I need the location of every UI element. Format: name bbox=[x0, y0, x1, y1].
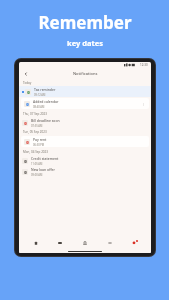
staticText: 09:12 AM bbox=[34, 93, 46, 97]
button[interactable]: More options bbox=[140, 101, 146, 107]
staticText: 12:30 bbox=[140, 63, 148, 67]
button[interactable]: Home bbox=[28, 237, 44, 249]
staticText: 09:00 AM bbox=[31, 173, 43, 177]
button[interactable]: Bill deadline soon bbox=[19, 117, 151, 128]
staticText: Remember bbox=[38, 11, 132, 34]
staticText: key dates bbox=[67, 38, 103, 48]
staticText: 06:30 PM bbox=[33, 143, 45, 147]
staticText: Notifications bbox=[73, 71, 98, 76]
staticText: Credit statement bbox=[31, 156, 59, 161]
staticText: Tue, 05 Sep 2023 bbox=[23, 130, 47, 134]
button[interactable]: Tax reminder bbox=[19, 86, 151, 97]
staticText: Added calendar bbox=[33, 99, 59, 104]
button[interactable]: Cards bbox=[52, 237, 68, 249]
staticText: Mon, 04 Sep 2023 bbox=[23, 150, 49, 154]
staticText: 08:40 AM bbox=[33, 105, 45, 109]
button[interactable]: Back bbox=[21, 69, 30, 78]
staticText: Thu, 07 Sep 2023 bbox=[23, 112, 48, 116]
button[interactable]: Added calendar bbox=[21, 98, 149, 109]
staticText: Pay rent bbox=[33, 137, 47, 142]
button[interactable]: Accounts bbox=[77, 237, 93, 249]
staticText: Today bbox=[23, 81, 32, 85]
button[interactable]: Pay rent bbox=[21, 136, 149, 147]
staticText: Tax reminder bbox=[34, 87, 56, 92]
button[interactable]: New loan offer bbox=[19, 166, 151, 177]
staticText: Bill deadline soon bbox=[31, 118, 60, 123]
staticText: New loan offer bbox=[31, 167, 55, 172]
button[interactable]: Credit statement bbox=[19, 155, 151, 166]
staticText: 07:55 AM bbox=[31, 124, 43, 128]
staticText: 11:05 AM bbox=[31, 162, 43, 166]
button[interactable]: Alerts bbox=[126, 237, 142, 249]
button[interactable]: Payments bbox=[102, 237, 118, 249]
